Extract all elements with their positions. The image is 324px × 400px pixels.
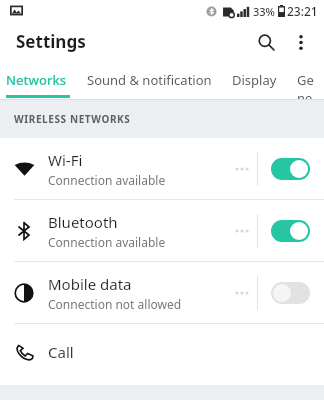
staticText: 23:21 — [287, 3, 318, 19]
button[interactable]: Search — [249, 25, 283, 59]
button[interactable]: Bluetooth — [0, 200, 324, 261]
button[interactable]: Mobile data off — [271, 282, 310, 304]
staticText: Connection available — [48, 234, 166, 250]
button[interactable]: Networks — [0, 62, 77, 100]
staticText: Display — [232, 71, 277, 89]
button[interactable]: Mobile data — [0, 262, 324, 323]
button[interactable]: Wi-Fi on — [271, 158, 310, 180]
staticText: Connection not allowed — [48, 296, 182, 312]
staticText: 33% — [253, 4, 275, 19]
staticText: Mobile data — [48, 274, 132, 294]
button[interactable]: General — [287, 62, 324, 100]
staticText: Networks — [6, 71, 67, 89]
staticText: WIRELESS NETWORKS — [14, 112, 131, 126]
staticText: Connection available — [48, 172, 166, 188]
button[interactable]: Bluetooth on — [271, 220, 310, 242]
button[interactable]: Display — [222, 62, 287, 100]
button[interactable]: More options — [284, 25, 318, 59]
staticText: Sound & notification — [87, 71, 212, 89]
staticText: Call — [48, 342, 74, 362]
button[interactable]: Sound & notification — [77, 62, 222, 100]
staticText: General — [297, 71, 314, 100]
button[interactable]: Wi-Fi — [0, 138, 324, 199]
staticText: Wi-Fi — [48, 150, 83, 170]
button[interactable]: Call — [0, 324, 324, 379]
staticText: Settings — [16, 30, 86, 53]
staticText: Bluetooth — [48, 212, 118, 232]
